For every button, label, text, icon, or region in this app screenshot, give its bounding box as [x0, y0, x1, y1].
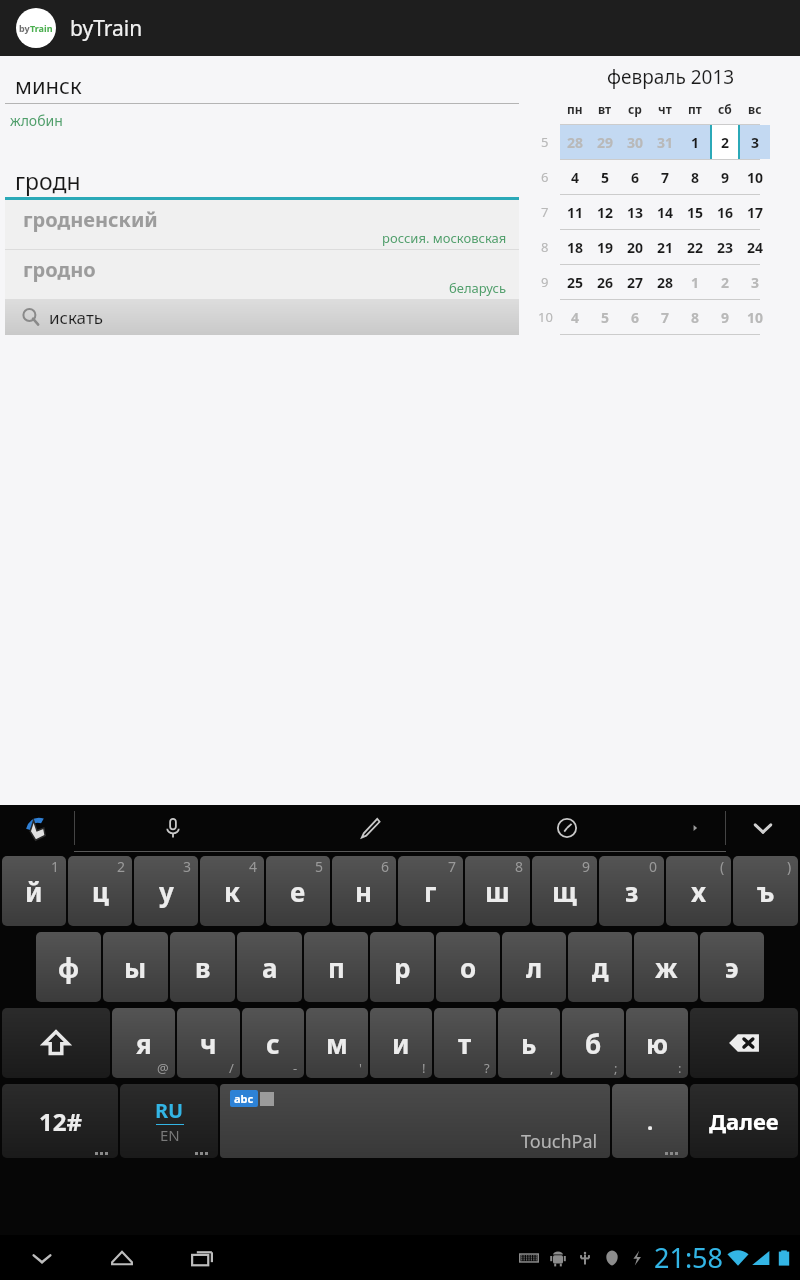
button[interactable]: ч	[177, 1008, 240, 1078]
button[interactable]: э	[700, 932, 764, 1002]
button[interactable]: 3	[740, 125, 770, 159]
button[interactable]: 5	[590, 300, 620, 334]
button[interactable]: 30	[620, 125, 650, 159]
button[interactable]: More	[686, 819, 704, 837]
button[interactable]: 22	[680, 230, 710, 264]
button[interactable]: 4	[560, 300, 590, 334]
button[interactable]: 5	[590, 160, 620, 194]
button[interactable]: с	[242, 1008, 304, 1078]
button[interactable]: ц	[68, 856, 132, 926]
button[interactable]: и	[370, 1008, 432, 1078]
staticText: 10	[538, 308, 553, 326]
button[interactable]: Recents	[182, 1238, 222, 1278]
button[interactable]: 13	[620, 195, 650, 229]
button[interactable]: 6	[620, 300, 650, 334]
button[interactable]: г	[398, 856, 463, 926]
button[interactable]: 8	[680, 160, 710, 194]
button[interactable]: 8	[680, 300, 710, 334]
button[interactable]: 18	[560, 230, 590, 264]
button[interactable]: м	[306, 1008, 368, 1078]
button[interactable]: к	[200, 856, 264, 926]
button[interactable]: 29	[590, 125, 620, 159]
button[interactable]: Далее	[690, 1084, 798, 1158]
button[interactable]: х	[666, 856, 731, 926]
button[interactable]: ж	[634, 932, 698, 1002]
button[interactable]: в	[170, 932, 235, 1002]
button[interactable]: я	[112, 1008, 175, 1078]
button[interactable]: гродн	[5, 160, 519, 200]
button[interactable]: 20	[620, 230, 650, 264]
button[interactable]: Gesture input	[0, 805, 74, 851]
button[interactable]: гродно	[5, 250, 519, 299]
button[interactable]: Shift	[2, 1008, 110, 1078]
button[interactable]: 9	[710, 300, 740, 334]
staticText: щ	[552, 874, 577, 909]
button[interactable]: е	[266, 856, 330, 926]
button[interactable]: 24	[740, 230, 770, 264]
button[interactable]: Backspace	[690, 1008, 798, 1078]
button[interactable]: ь	[498, 1008, 560, 1078]
button[interactable]: а	[237, 932, 302, 1002]
button[interactable]: 14	[650, 195, 680, 229]
button[interactable]: 12#	[2, 1084, 118, 1158]
button[interactable]: 7	[650, 160, 680, 194]
button[interactable]: 10	[740, 300, 770, 334]
button[interactable]: abc	[220, 1084, 610, 1158]
button[interactable]: 2	[710, 265, 740, 299]
button[interactable]: ф	[36, 932, 101, 1002]
button[interactable]: щ	[532, 856, 597, 926]
button[interactable]: 25	[560, 265, 590, 299]
button[interactable]: 3	[740, 265, 770, 299]
button[interactable]: 26	[590, 265, 620, 299]
button[interactable]: минск	[5, 66, 519, 104]
button[interactable]: т	[434, 1008, 496, 1078]
button[interactable]: з	[599, 856, 664, 926]
staticText: TouchPal	[521, 1129, 598, 1154]
button[interactable]: о	[436, 932, 500, 1002]
button[interactable]: у	[134, 856, 198, 926]
button[interactable]: Search	[5, 299, 519, 335]
button[interactable]: н	[332, 856, 396, 926]
button[interactable]: б	[562, 1008, 624, 1078]
button[interactable]: 2	[710, 125, 740, 159]
button[interactable]: Back	[22, 1238, 62, 1278]
button[interactable]: д	[568, 932, 632, 1002]
button[interactable]: 10	[740, 160, 770, 194]
button[interactable]: ы	[103, 932, 168, 1002]
button[interactable]: 21	[650, 230, 680, 264]
button[interactable]: .	[612, 1084, 688, 1158]
button[interactable]: п	[304, 932, 368, 1002]
button[interactable]: Hide keyboard	[726, 805, 800, 851]
button[interactable]: 28	[650, 265, 680, 299]
button[interactable]: 15	[680, 195, 710, 229]
button[interactable]: л	[502, 932, 566, 1002]
button[interactable]: Handwriting	[353, 811, 387, 845]
button[interactable]: р	[370, 932, 434, 1002]
button[interactable]: Voice input	[156, 811, 190, 845]
button[interactable]: 12	[590, 195, 620, 229]
button[interactable]: 31	[650, 125, 680, 159]
button[interactable]: 7	[650, 300, 680, 334]
button[interactable]: 9	[710, 160, 740, 194]
button[interactable]: 17	[740, 195, 770, 229]
button[interactable]: 16	[710, 195, 740, 229]
button[interactable]: 1	[680, 125, 710, 159]
button[interactable]: 11	[560, 195, 590, 229]
button[interactable]: ю	[626, 1008, 688, 1078]
button[interactable]: 4	[560, 160, 590, 194]
button[interactable]: 1	[680, 265, 710, 299]
button[interactable]: 6	[620, 160, 650, 194]
staticText: 3	[183, 857, 192, 876]
button[interactable]: Emoji	[550, 811, 584, 845]
button[interactable]: Home	[102, 1238, 142, 1278]
button[interactable]: гродненский	[5, 200, 519, 249]
button[interactable]: ъ	[733, 856, 798, 926]
button[interactable]: 23	[710, 230, 740, 264]
button[interactable]: 19	[590, 230, 620, 264]
button[interactable]: RU	[120, 1084, 218, 1158]
button[interactable]: ш	[465, 856, 530, 926]
button[interactable]: й	[2, 856, 66, 926]
button[interactable]: 27	[620, 265, 650, 299]
button[interactable]: 28	[560, 125, 590, 159]
staticText: 13	[627, 203, 644, 222]
